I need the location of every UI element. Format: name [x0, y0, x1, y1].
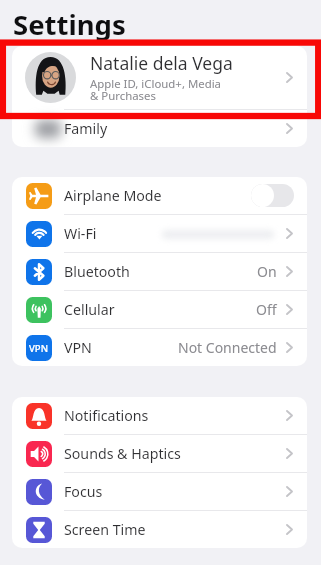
staticText: Cellular — [64, 300, 115, 319]
staticText: Off — [256, 300, 277, 319]
staticText: Family — [64, 119, 108, 138]
staticText: Bluetooth — [64, 262, 130, 281]
staticText: Apple ID, iCloud+, Media & Purchases — [90, 76, 221, 104]
staticText: On — [257, 262, 277, 281]
staticText: Natalie dela Vega — [90, 51, 233, 75]
button[interactable]: Bluetooth — [12, 253, 307, 290]
button[interactable]: Airplane Mode — [12, 177, 307, 214]
staticText: Notifications — [64, 406, 149, 425]
staticText: VPN — [29, 342, 49, 355]
staticText: Airplane Mode — [64, 186, 162, 205]
button[interactable]: Cellular — [12, 291, 307, 328]
staticText: Focus — [64, 482, 103, 501]
button[interactable]: Airplane Mode toggle — [251, 184, 294, 207]
staticText: Wi-Fi — [64, 224, 97, 243]
button[interactable]: Notifications — [12, 397, 307, 434]
button[interactable]: Focus — [12, 473, 307, 510]
button[interactable]: Screen Time — [12, 511, 307, 548]
button[interactable]: VPN — [12, 329, 307, 366]
button[interactable]: Natalie dela Vega — [12, 46, 307, 109]
staticText: Settings — [13, 6, 126, 43]
staticText: Not Connected — [178, 338, 277, 357]
staticText: Screen Time — [64, 520, 146, 539]
button[interactable]: Wi-Fi — [12, 215, 307, 252]
staticText: VPN — [64, 338, 92, 357]
button[interactable]: Family — [12, 110, 307, 147]
staticText: Sounds & Haptics — [64, 444, 181, 463]
button[interactable]: Sounds & Haptics — [12, 435, 307, 472]
